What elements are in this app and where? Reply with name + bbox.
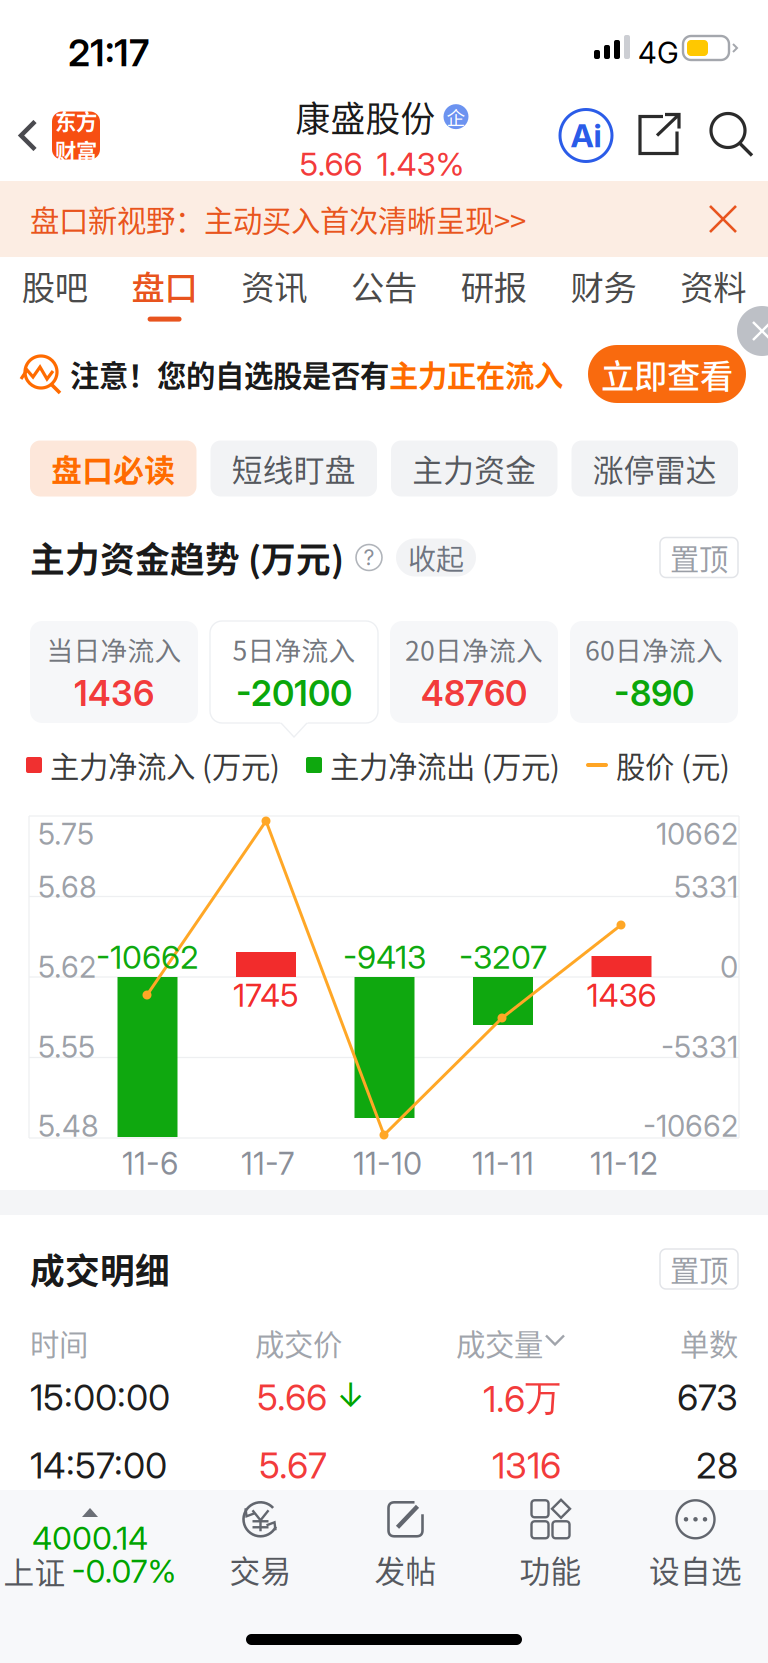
button[interactable]: 立即查看 (588, 345, 746, 403)
staticText: 15:00:00 (30, 1375, 170, 1419)
button[interactable]: 设自选 (623, 1490, 768, 1600)
staticText: 资料 (680, 261, 746, 310)
staticText: 11-10 (353, 1145, 422, 1182)
staticText: 成交明细 (30, 1244, 170, 1294)
staticText: 5.66 (257, 1375, 327, 1419)
staticText: ↓ (337, 1374, 364, 1415)
staticText: -3207 (459, 938, 547, 976)
staticText: 10662 (656, 816, 738, 852)
button[interactable]: 发帖 (333, 1490, 478, 1600)
staticText: 涨停雷达 (593, 446, 717, 491)
button[interactable]: 资讯 (219, 257, 329, 325)
staticText: 股价 (元) (616, 744, 730, 786)
staticText: 60日净流入 (585, 630, 723, 668)
staticText: 研报 (461, 261, 527, 310)
button[interactable]: 涨停雷达 (571, 440, 738, 496)
button[interactable]: 交易 (188, 1490, 333, 1600)
staticText: 收起 (408, 537, 464, 578)
staticText: 财富 (55, 135, 97, 166)
staticText: 康盛股份 (295, 91, 435, 142)
staticText: 发帖 (374, 1547, 436, 1592)
staticText: 盘口必读 (51, 446, 175, 491)
button[interactable]: 置顶 (660, 1249, 738, 1289)
staticText: 东方 (55, 105, 97, 136)
staticText: 14:57:00 (30, 1443, 167, 1487)
button[interactable]: 收起 (396, 538, 476, 576)
staticText: 48760 (421, 672, 527, 714)
staticText: 5.55 (38, 1029, 95, 1065)
staticText: -20100 (236, 672, 352, 714)
staticText: 时间 (30, 1321, 88, 1364)
staticText: 11-6 (122, 1145, 178, 1182)
button[interactable]: 财务 (549, 257, 658, 325)
button[interactable]: 盘口必读 (30, 440, 196, 496)
staticText: -5331 (661, 1029, 738, 1065)
button[interactable]: 研报 (439, 257, 549, 325)
button[interactable]: 盘口 (110, 257, 219, 325)
staticText: 上证 (3, 1549, 65, 1593)
button[interactable]: Close ad (718, 331, 768, 381)
button[interactable]: 功能 (478, 1490, 623, 1600)
staticText: 1436 (586, 976, 656, 1014)
button[interactable]: 资料 (658, 257, 768, 325)
staticText: 企 (446, 103, 465, 130)
button[interactable]: Back (0, 90, 108, 181)
button[interactable]: 60日净流入 (570, 621, 738, 723)
button[interactable]: Share (624, 90, 696, 181)
staticText: 财务 (570, 261, 636, 310)
staticText: 673 (677, 1375, 738, 1419)
button[interactable]: Close banner (708, 204, 768, 234)
staticText: 5.66 (299, 145, 362, 183)
staticText: 4G (638, 35, 679, 70)
staticText: 4000.14 (32, 1519, 148, 1557)
staticText: 1.6万 (483, 1375, 561, 1421)
staticText: 当日净流入 (46, 630, 181, 668)
staticText: 盘口 (132, 261, 198, 310)
staticText: 28 (696, 1443, 738, 1487)
button[interactable]: 置顶 (660, 537, 738, 577)
button[interactable]: AI assistant (548, 90, 624, 181)
staticText: 单数 (680, 1321, 738, 1364)
staticText: 11-12 (590, 1145, 658, 1182)
button[interactable]: 短线盯盘 (210, 440, 377, 496)
staticText: -10662 (643, 1108, 738, 1144)
staticText: 1316 (492, 1443, 561, 1487)
button[interactable]: 5日净流入 (210, 621, 378, 723)
staticText: 1.43% (376, 145, 464, 183)
staticText: -10662 (96, 938, 199, 976)
staticText: -9413 (343, 938, 426, 976)
button[interactable]: 主力资金 (391, 440, 557, 496)
staticText: 置顶 (670, 1248, 728, 1290)
staticText: 盘口新视野：主动买入首次清晰呈现>> (30, 198, 526, 240)
staticText: 主力正在流入 (389, 353, 563, 395)
staticText: 公告 (351, 261, 417, 310)
staticText: 置顶 (670, 536, 728, 579)
button[interactable]: 4000.14 (0, 1490, 188, 1600)
staticText: 成交量 (456, 1321, 543, 1364)
staticText: 5.75 (38, 816, 94, 852)
staticText: 5.62 (38, 949, 96, 985)
staticText: 5日净流入 (232, 630, 355, 668)
staticText: 成交价 (255, 1321, 342, 1364)
staticText: 11-7 (241, 1145, 295, 1182)
staticText: 0 (720, 949, 738, 985)
button[interactable]: 当日净流入 (30, 621, 198, 723)
staticText: 资讯 (241, 261, 307, 310)
staticText: 21:17 (68, 30, 149, 75)
staticText: 11-11 (472, 1145, 534, 1182)
staticText: 20日净流入 (405, 630, 543, 668)
button[interactable]: 股吧 (0, 257, 110, 325)
staticText: Ai (570, 116, 601, 155)
staticText: 5.68 (38, 869, 97, 905)
staticText: 5.48 (38, 1108, 99, 1144)
button[interactable]: 20日净流入 (390, 621, 558, 723)
button[interactable]: 公告 (329, 257, 439, 325)
staticText: 主力资金趋势 (万元) (30, 532, 344, 583)
staticText: 1745 (233, 976, 299, 1014)
staticText: 立即查看 (601, 350, 733, 398)
button[interactable]: Search (696, 90, 768, 181)
staticText: 设自选 (649, 1547, 742, 1592)
staticText: 短线盯盘 (232, 446, 356, 491)
staticText: 主力净流入 (万元) (50, 744, 280, 786)
staticText: -0.07% (71, 1552, 176, 1590)
